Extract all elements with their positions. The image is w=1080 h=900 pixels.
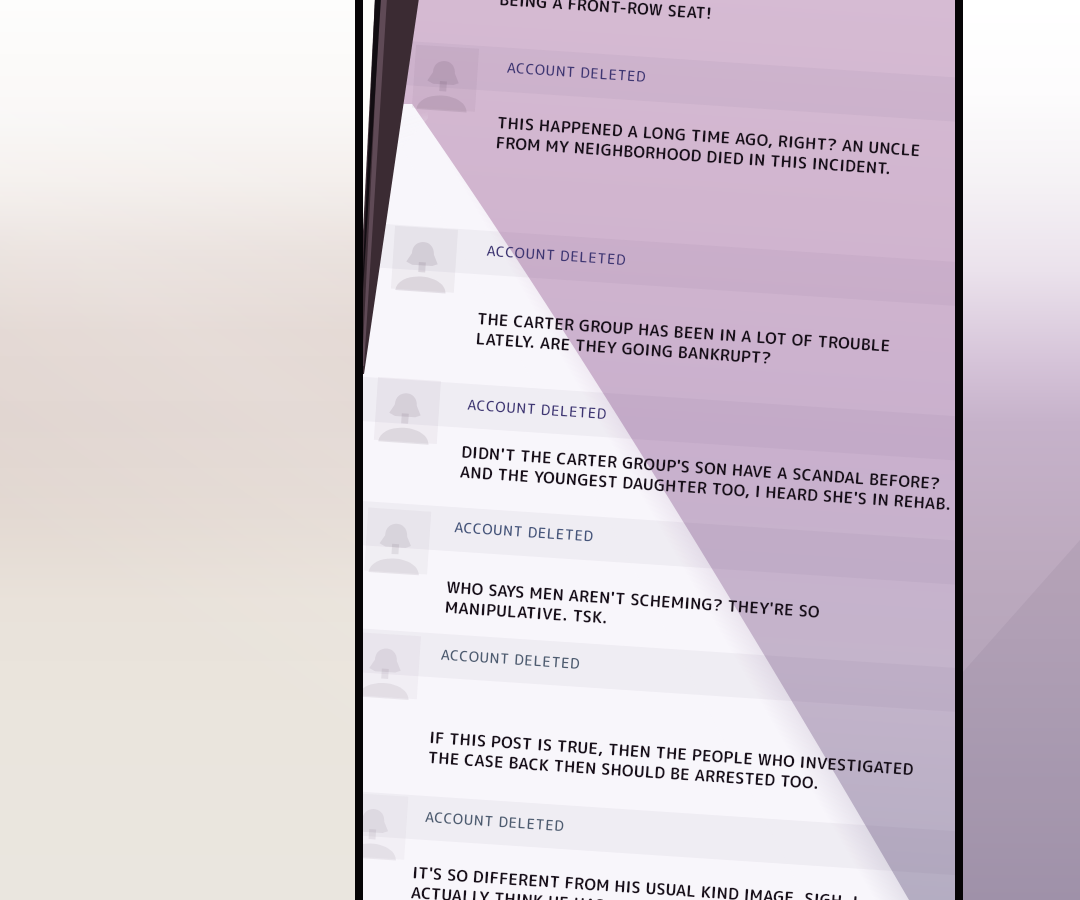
button[interactable] bbox=[0, 0, 1080, 900]
